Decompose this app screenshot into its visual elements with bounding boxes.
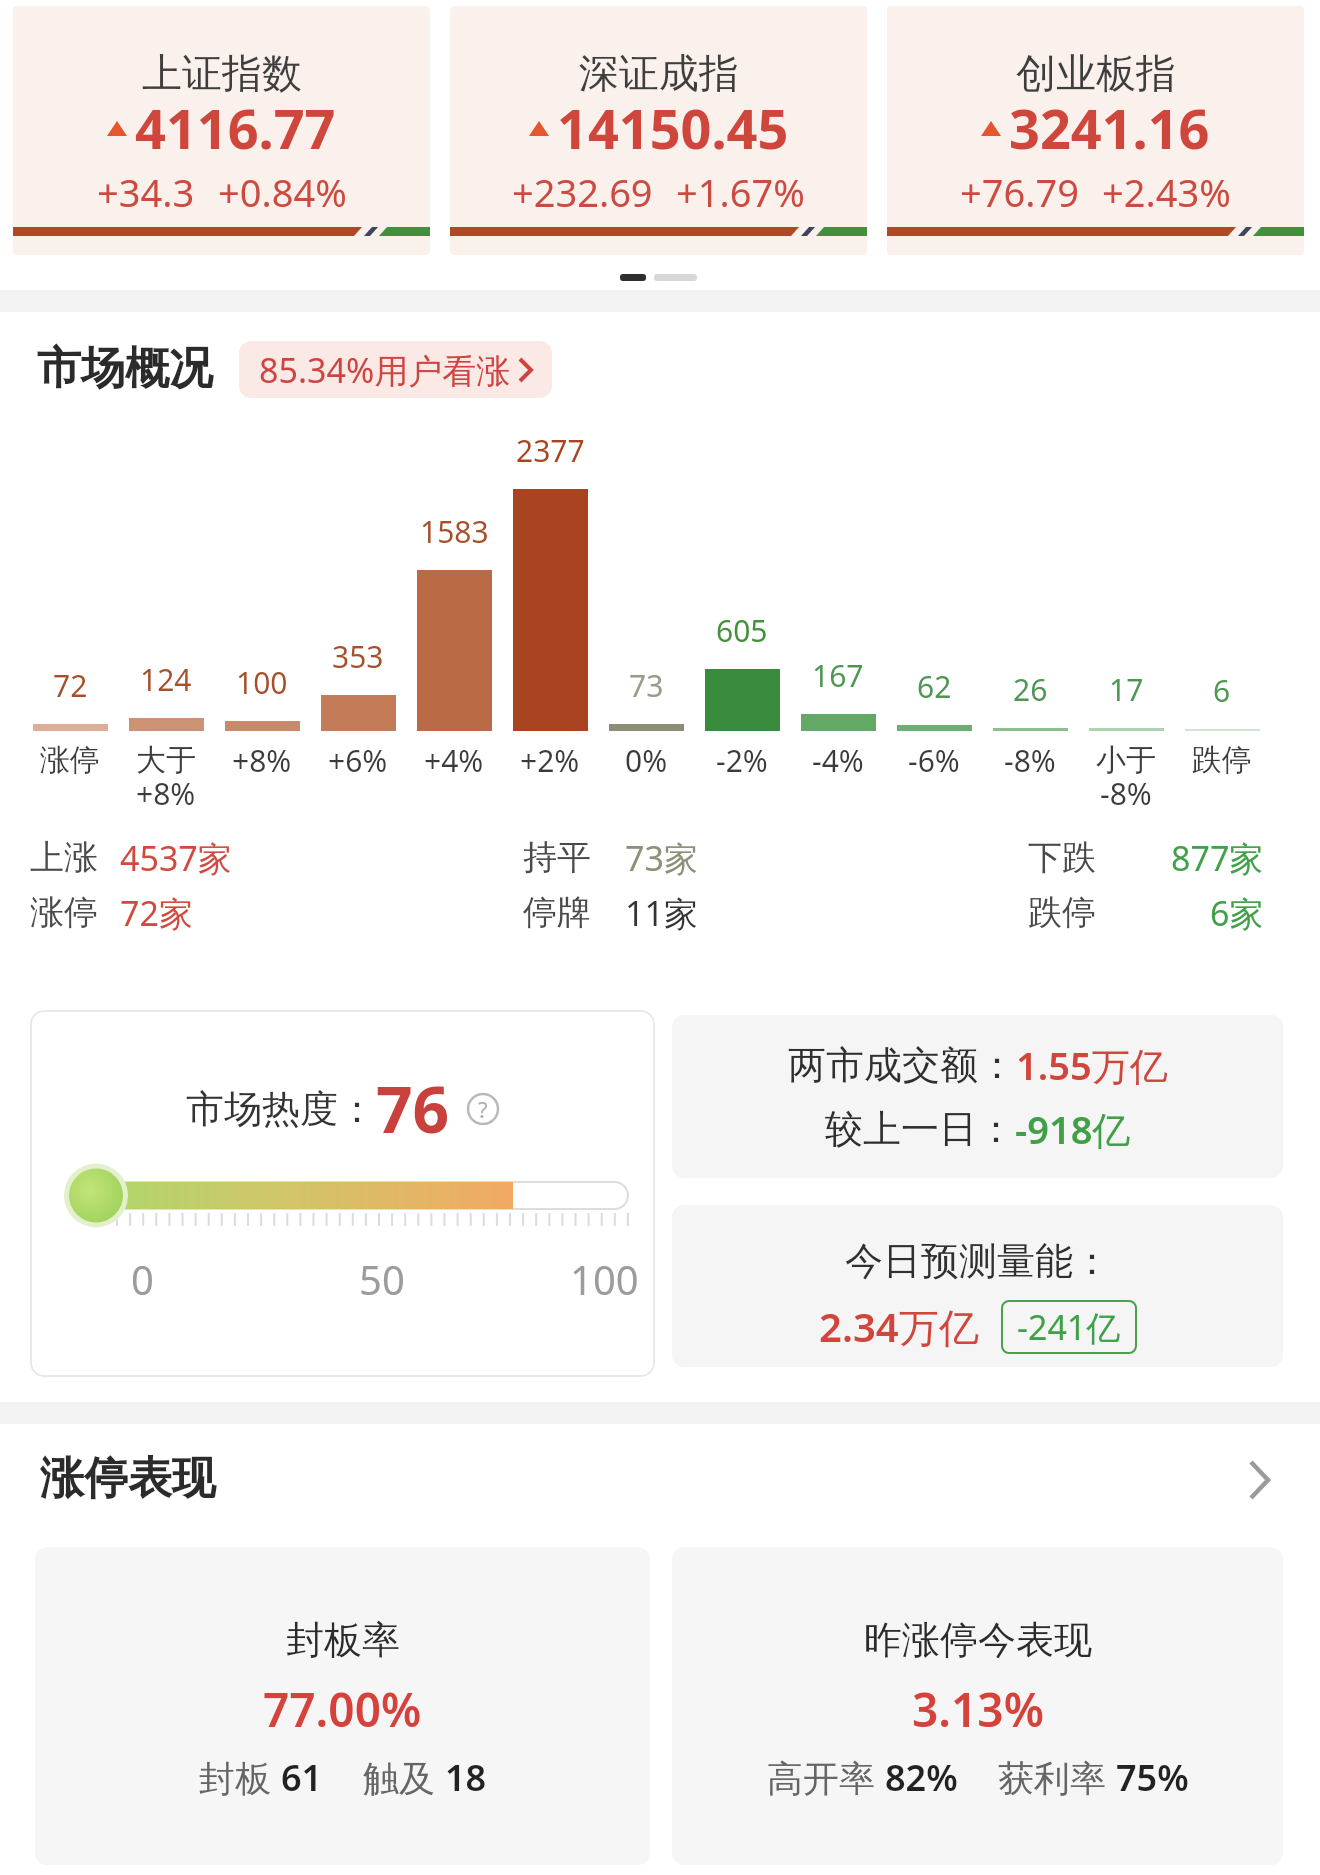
staticText: 14150.45 [557,91,789,165]
staticText: 4116.77 [135,91,336,165]
staticText: 877家 [1171,835,1264,879]
button[interactable] [35,1547,650,1865]
staticText: 触及 [363,1753,445,1801]
button[interactable]: 深证成指 [450,6,867,255]
staticText: 持平 [523,836,591,879]
staticText: +232.69 [512,166,653,218]
staticText: 100 [236,662,288,703]
staticText: 深证成指 [579,48,739,98]
staticText: 82% [885,1753,958,1801]
staticText: 创业板指 [1016,48,1176,98]
staticText: 124 [140,659,192,700]
staticText: 涨停表现 [40,1451,216,1506]
staticText: 跌停 [1192,741,1252,779]
staticText: 73 [629,665,664,706]
staticText: 73家 [625,835,698,879]
staticText: -918亿 [1015,1103,1131,1155]
staticText: 封板率 [286,1616,400,1664]
staticText: 26 [1013,669,1048,710]
button[interactable]: 上证指数 [13,6,430,255]
staticText: ? [478,1094,488,1124]
staticText: 605 [716,610,768,651]
staticText: 353 [332,636,384,677]
staticText: 167 [812,655,864,696]
staticText: +34.3 [97,166,195,218]
staticText: 75% [1116,1753,1189,1801]
staticText: 72 [53,665,88,706]
staticText: 0 [131,1252,154,1296]
staticText: 76 [376,1065,450,1152]
staticText: 6家 [1210,890,1264,934]
button[interactable]: 两市成交额： [672,1015,1283,1178]
staticText: 17 [1109,669,1144,710]
staticText: 2.34万亿 [819,1299,979,1354]
staticText: -6% [908,740,960,781]
staticText: 高开率 [767,1753,885,1801]
button[interactable] [672,1547,1283,1865]
staticText: 较上一日： [825,1105,1015,1153]
staticText: 6 [1213,670,1231,711]
button[interactable]: 85.34%用户看涨 [239,341,552,398]
staticText: 小于 [1096,741,1156,779]
staticText: 62 [917,666,952,707]
staticText: 18 [445,1753,487,1801]
staticText: 1583 [420,511,489,552]
staticText: 61 [281,1753,323,1801]
staticText: 上证指数 [142,48,302,98]
staticText: 大于 [136,741,196,779]
staticText: 0% [625,740,668,781]
staticText: 跌停 [1028,891,1096,934]
staticText: -2% [716,740,768,781]
button[interactable] [1230,1450,1290,1510]
staticText: +1.67% [676,166,805,218]
staticText: 85.34%用户看涨 [259,347,511,393]
staticText: 停牌 [523,891,591,934]
staticText: 涨停 [30,891,98,934]
staticText: 市场概况 [37,341,213,396]
staticText: 11家 [625,890,698,934]
staticText: 1.55万亿 [1016,1039,1168,1091]
staticText: 封板 [199,1753,281,1801]
staticText: -8% [1100,773,1152,814]
staticText: 今日预测量能： [845,1237,1111,1285]
staticText: 100 [570,1252,639,1296]
staticText: 3241.16 [1009,91,1210,165]
staticText: 77.00% [263,1678,422,1734]
staticText: 4537家 [120,835,232,879]
staticText: +6% [328,740,388,781]
staticText: -8% [1004,740,1056,781]
staticText: 3.13% [912,1678,1044,1734]
staticText: 下跌 [1028,836,1096,879]
staticText: 72家 [120,890,193,934]
button[interactable]: 今日预测量能： [672,1205,1283,1367]
staticText: 两市成交额： [788,1041,1016,1089]
staticText: -4% [812,740,864,781]
staticText: 上涨 [30,836,98,879]
button[interactable]: 市场热度： [30,1010,655,1377]
staticText: +2.43% [1102,166,1231,218]
button[interactable]: 创业板指 [887,6,1304,255]
staticText: 市场热度： [186,1085,376,1133]
staticText: +8% [232,740,292,781]
staticText: +0.84% [218,166,347,218]
staticText: +4% [424,740,484,781]
staticText: +8% [136,773,196,814]
staticText: 涨停 [40,741,100,779]
staticText: +76.79 [960,166,1079,218]
staticText: 昨涨停今表现 [864,1616,1092,1664]
staticText: 2377 [516,430,585,471]
staticText: +2% [520,740,580,781]
staticText: -241亿 [1017,1304,1121,1350]
staticText: 获利率 [998,1753,1116,1801]
staticText: 50 [359,1252,405,1296]
